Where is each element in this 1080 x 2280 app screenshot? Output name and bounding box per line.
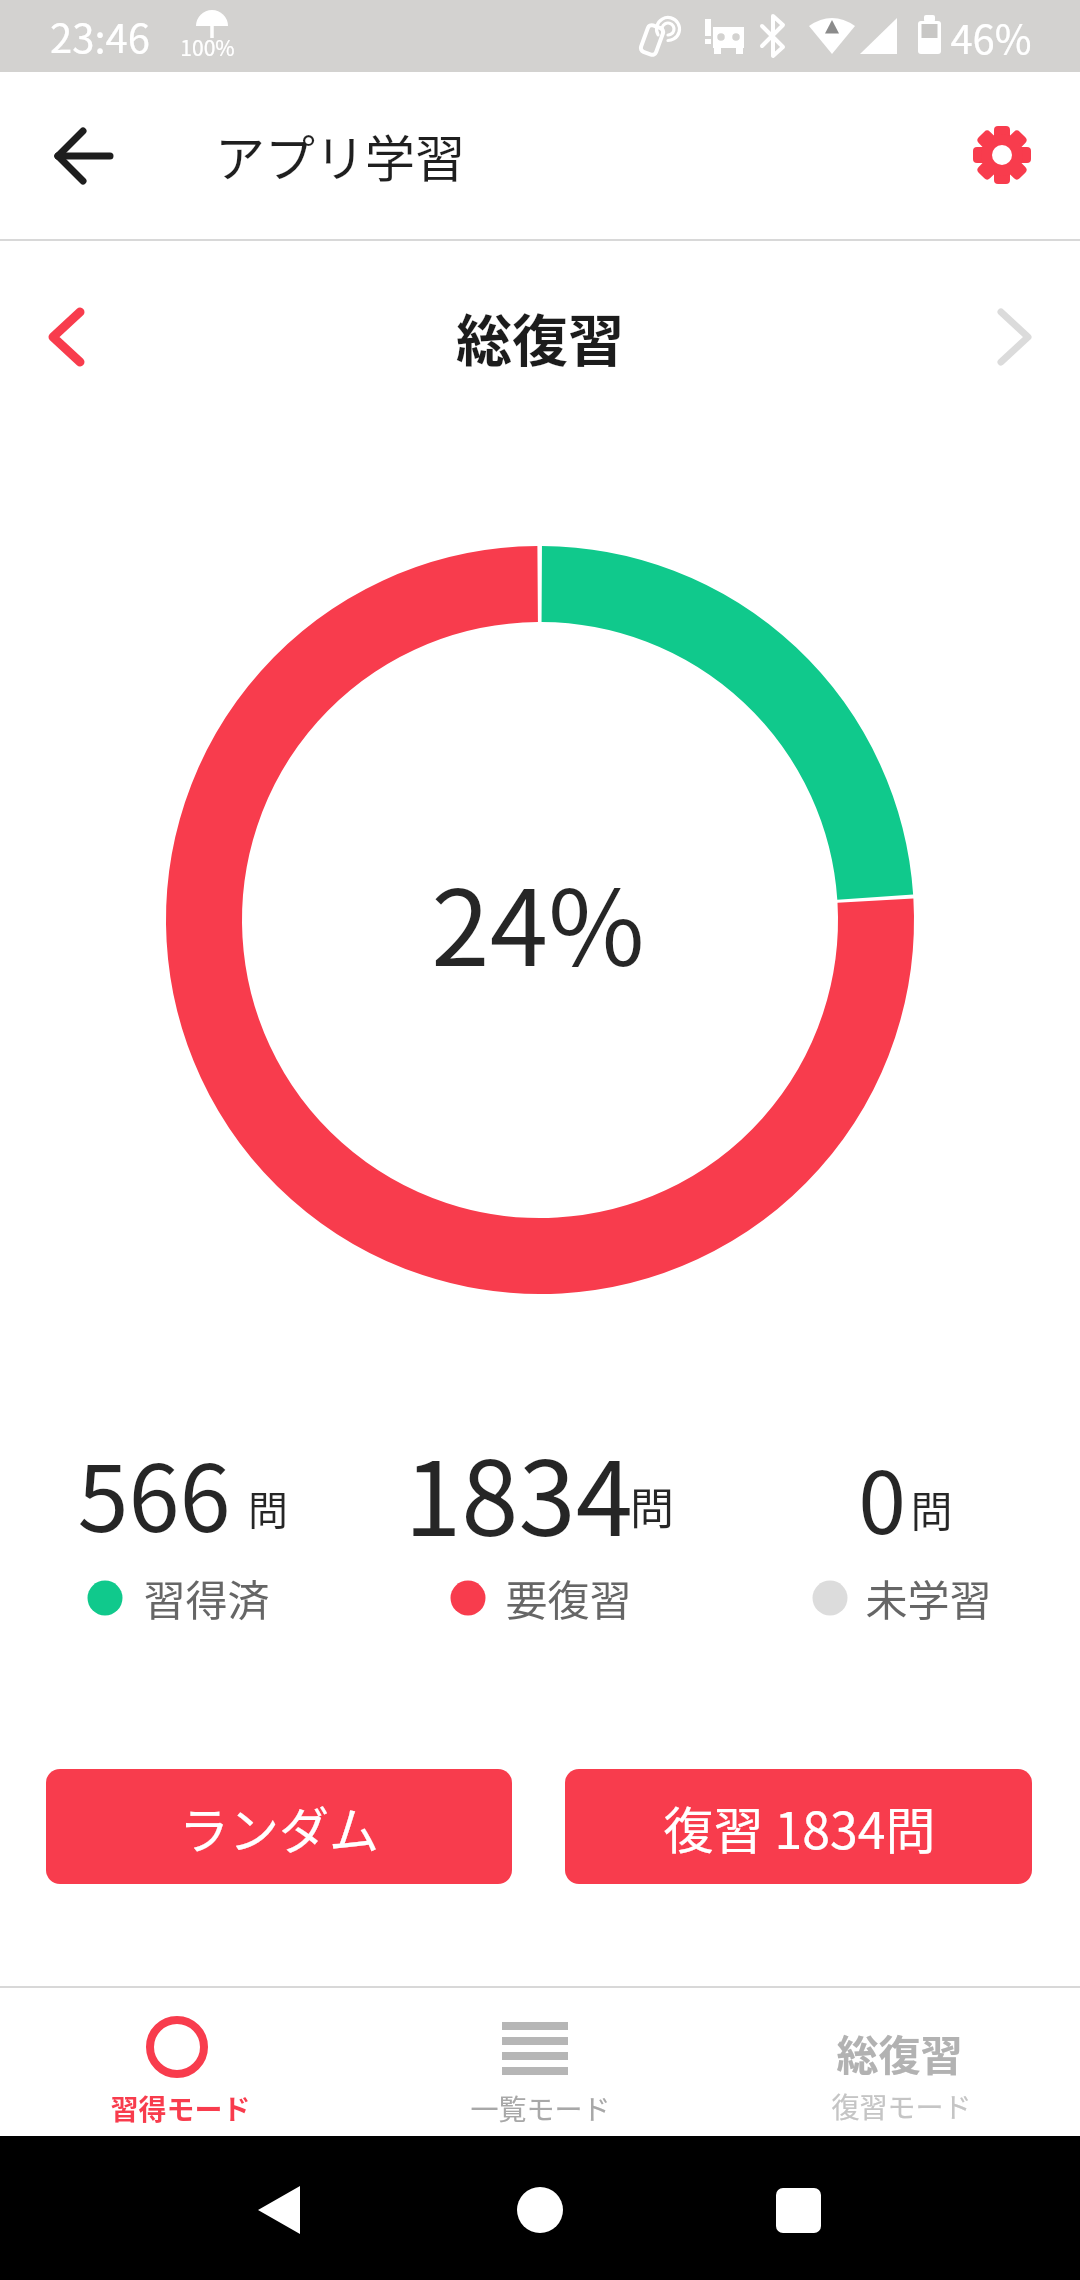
staticText: 一覧モード [470,2088,611,2129]
staticText: 復習モード [831,2086,972,2127]
staticText: 24% [431,844,645,996]
staticText: 問 [910,1478,953,1539]
staticText: 習得モード [110,2088,251,2129]
staticText: 復習 1834問 [663,1791,936,1863]
staticText: 566 [77,1425,231,1558]
staticText: 100% [180,32,235,62]
staticText: アプリ学習 [215,119,465,191]
staticText: 0 [858,1434,906,1559]
staticText: 問 [630,1474,674,1538]
staticText: ランダム [179,1791,379,1863]
staticText: 総復習 [456,296,624,377]
staticText: 46% [950,8,1032,66]
staticText: 習得済 [143,1567,270,1628]
staticText: 未学習 [865,1567,992,1628]
staticText: 23:46 [50,7,150,65]
staticText: 1834 [404,1417,633,1566]
staticText: 問 [248,1479,288,1537]
staticText: 総復習 [836,2022,963,2083]
staticText: 要復習 [505,1567,632,1628]
